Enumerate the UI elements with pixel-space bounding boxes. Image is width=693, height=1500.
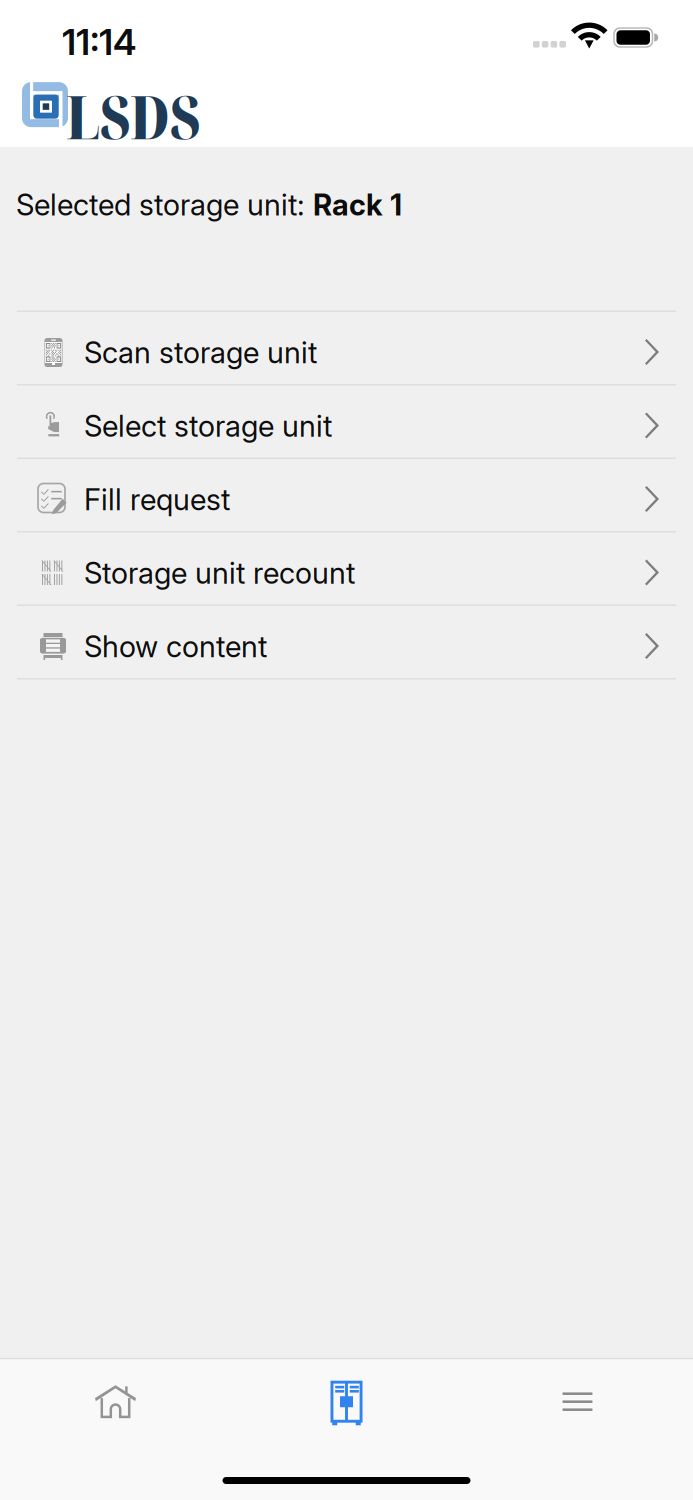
- staticText: Selected storage unit:: [16, 187, 313, 222]
- staticText: Scan storage unit: [84, 335, 317, 370]
- staticText: Fill request: [84, 482, 230, 517]
- staticText: Rack 1: [313, 187, 402, 222]
- staticText: Select storage unit: [84, 408, 332, 444]
- button[interactable]: Fill request: [0, 459, 693, 531]
- staticText: Storage unit recount: [84, 555, 355, 591]
- staticText: Show content: [84, 629, 267, 664]
- button[interactable]: Menu: [462, 1359, 693, 1444]
- button[interactable]: Show content: [0, 606, 693, 678]
- staticText: LSDS: [66, 75, 200, 157]
- staticText: 11:14: [62, 20, 136, 64]
- button[interactable]: Storage unit recount: [0, 532, 693, 604]
- button[interactable]: Storage units: [231, 1359, 462, 1444]
- button[interactable]: Scan storage unit: [0, 312, 693, 384]
- button[interactable]: Home: [0, 1359, 231, 1444]
- button[interactable]: Select storage unit: [0, 385, 693, 457]
